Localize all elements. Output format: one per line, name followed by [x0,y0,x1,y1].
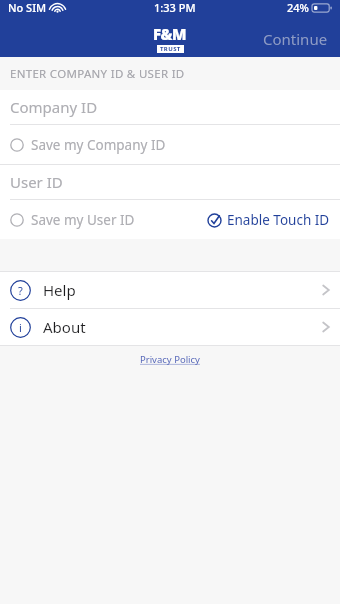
button[interactable]: Company ID [0,90,340,124]
staticText: Continue [263,29,328,49]
staticText: About [43,317,86,337]
staticText: Company ID [10,97,98,117]
button[interactable]: F&M [153,24,187,53]
button[interactable]: Save my Company ID [0,125,340,164]
staticText: Enable Touch ID [227,211,330,229]
staticText: TRUST [160,45,181,53]
staticText: F&M [153,24,187,44]
staticText: 24% [287,0,309,15]
button[interactable]: i [0,309,340,345]
button[interactable]: Privacy Policy [136,349,204,370]
button[interactable]: ? [0,272,340,308]
button[interactable]: User ID [0,165,340,199]
staticText: Save my User ID [31,211,135,229]
staticText: User ID [10,172,63,192]
staticText: Privacy Policy [140,353,200,366]
button[interactable]: Enable Touch ID [207,211,330,229]
staticText: ENTER COMPANY ID & USER ID [10,66,185,82]
staticText: Help [43,280,76,300]
staticText: 1:33 PM [154,0,196,15]
staticText: i [19,320,22,335]
staticText: ? [18,283,23,298]
button[interactable]: Save my User ID [0,200,340,239]
button[interactable]: Continue [251,23,340,55]
staticText: Save my Company ID [31,136,166,154]
staticText: No SIM [8,0,47,15]
